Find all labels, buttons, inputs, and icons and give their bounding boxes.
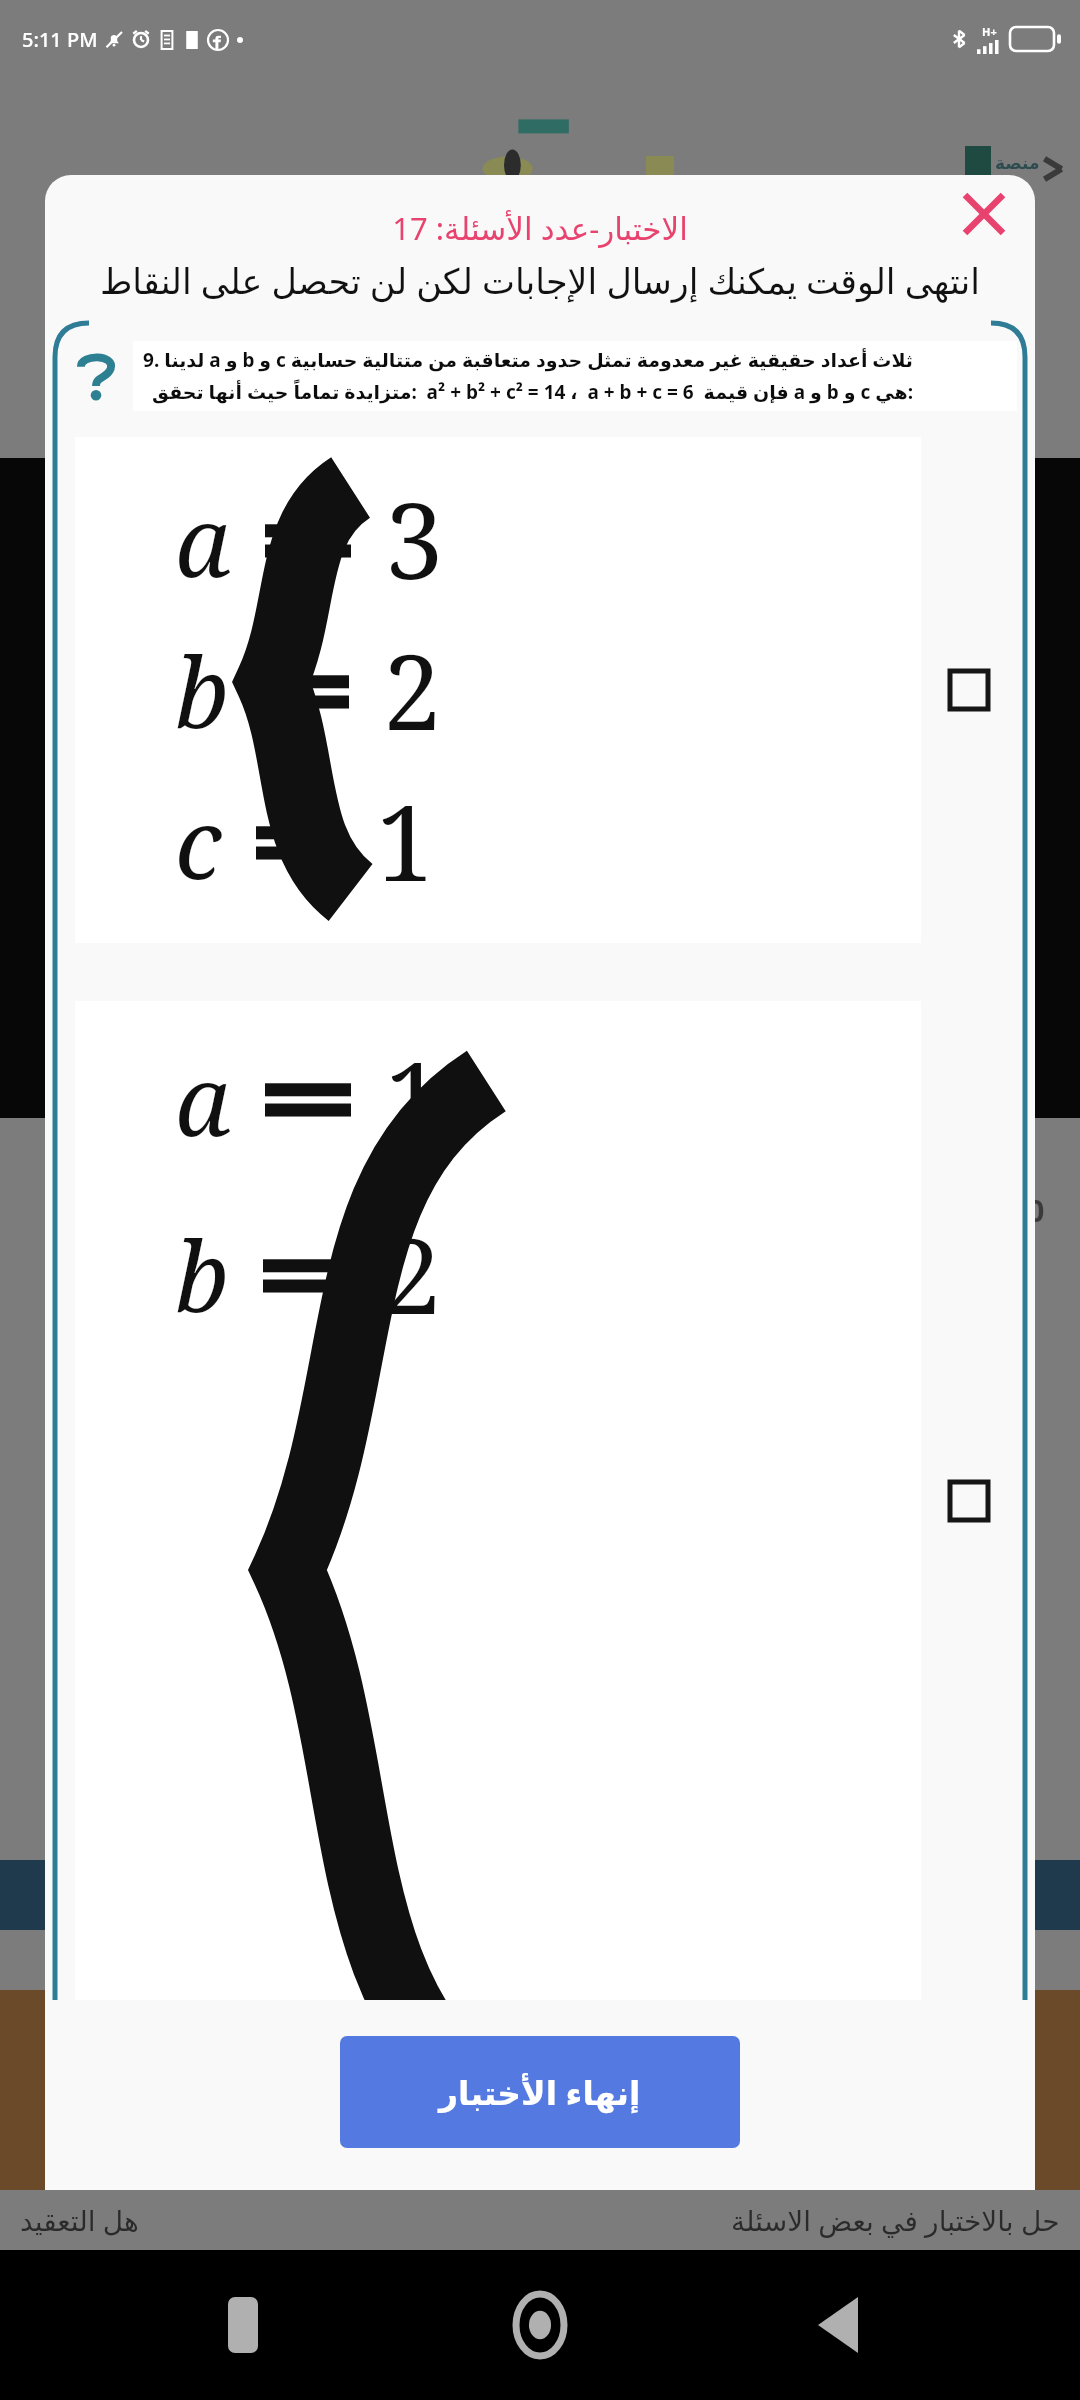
staticText: c bbox=[175, 776, 222, 907]
staticText: إنهاء الأختبار bbox=[439, 2070, 641, 2115]
staticText: انتهى الوقت يمكنك إرسال الإجابات لكن لن … bbox=[71, 257, 1009, 305]
staticText: b bbox=[175, 1209, 229, 1340]
staticText: 9. لدينا a و b و c ثلاث أعداد حقيقية غير… bbox=[143, 347, 913, 373]
staticText: a bbox=[175, 474, 231, 605]
button[interactable]: Recents bbox=[188, 2270, 298, 2380]
staticText: 2 bbox=[383, 1203, 442, 1345]
staticText: هل التعقيد bbox=[20, 2201, 139, 2239]
button[interactable]: إغلاق bbox=[951, 181, 1017, 247]
staticText: H+ bbox=[982, 24, 997, 39]
button[interactable]: Back bbox=[783, 2270, 893, 2380]
staticText: الاختبار-عدد الأسئلة: 17 bbox=[392, 207, 688, 249]
staticText: 1 bbox=[385, 1027, 444, 1169]
button[interactable]: a bbox=[63, 437, 1017, 943]
staticText: 00 bbox=[1010, 1190, 1045, 1231]
staticText: a bbox=[175, 1033, 231, 1164]
staticText: b bbox=[175, 625, 229, 756]
button[interactable]: اختيار الإجابة bbox=[937, 658, 1001, 722]
button[interactable]: اختيار الإجابة bbox=[937, 1469, 1001, 1533]
button[interactable]: Home bbox=[485, 2270, 595, 2380]
staticText: منصة bbox=[995, 153, 1040, 173]
staticText: 2 bbox=[383, 619, 442, 761]
staticText: حل بالاختبار في بعض الاسئلة bbox=[731, 2201, 1060, 2239]
staticText: متزايدة تماماً حيث أنها تحقق: a² + b² + … bbox=[152, 379, 913, 405]
staticText: 3 bbox=[385, 468, 444, 610]
button[interactable]: a bbox=[63, 1001, 1017, 2000]
staticText: 1 bbox=[376, 770, 435, 912]
button[interactable]: إنهاء الأختبار bbox=[340, 2036, 740, 2148]
staticText: 5:11 PM bbox=[22, 26, 98, 53]
